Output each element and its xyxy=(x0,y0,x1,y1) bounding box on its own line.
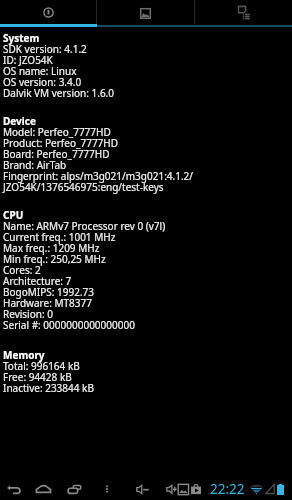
button[interactable]: Back xyxy=(5,480,23,498)
staticText: 22:22 xyxy=(210,480,245,498)
button[interactable]: Home xyxy=(34,480,52,498)
staticText: CPU Name: ARMv7 Processor rev 0 (v7l) Cu… xyxy=(3,208,166,332)
staticText: System SDK version: 4.1.2 ID: JZO54K OS … xyxy=(3,31,115,100)
button[interactable]: More options xyxy=(98,480,116,498)
button[interactable]: System info xyxy=(0,0,96,24)
button[interactable]: Apps xyxy=(189,480,203,498)
button[interactable]: Volume up xyxy=(165,479,189,499)
button[interactable]: Recent apps xyxy=(65,480,83,498)
staticText: Memory Total: 996164 kB Free: 94428 kB I… xyxy=(3,348,94,395)
staticText: Device Model: Perfeo_7777HD Product: Per… xyxy=(3,114,194,194)
button[interactable]: Screenshot xyxy=(97,0,194,24)
button[interactable]: Volume down xyxy=(135,479,149,499)
button[interactable]: Report xyxy=(195,0,292,24)
